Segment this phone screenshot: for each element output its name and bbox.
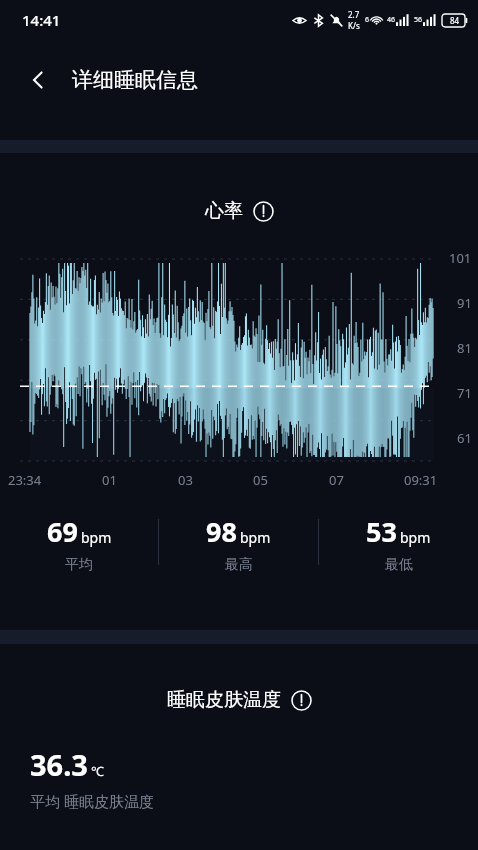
staticText: 53 xyxy=(366,513,397,550)
staticText: bpm xyxy=(400,528,431,547)
button[interactable]: 睡眠皮肤温度 xyxy=(0,688,478,712)
button[interactable]: 心率 xyxy=(0,199,478,223)
staticText: K/s xyxy=(348,20,360,31)
staticText: bpm xyxy=(81,528,112,547)
staticText: 81 xyxy=(457,339,472,357)
staticText: 71 xyxy=(457,384,472,402)
button[interactable]: 36.3 xyxy=(30,745,478,811)
other: Info xyxy=(253,201,274,222)
staticText: 最低 xyxy=(385,556,413,571)
staticText: 101 xyxy=(449,249,472,267)
button[interactable]: 98 xyxy=(159,513,318,571)
staticText: 03 xyxy=(178,471,193,489)
staticText: 最高 xyxy=(225,556,253,571)
staticText: 详细睡眠信息 xyxy=(72,67,198,93)
staticText: 69 xyxy=(47,513,78,550)
staticText: 心率 xyxy=(205,199,243,223)
staticText: 14:41 xyxy=(22,10,61,30)
staticText: bpm xyxy=(240,528,271,547)
staticText: 56 xyxy=(414,15,423,25)
other: Info xyxy=(291,690,312,711)
staticText: 98 xyxy=(206,513,237,550)
staticText: 睡眠皮肤温度 xyxy=(167,688,281,712)
staticText: 36.3 xyxy=(30,745,88,784)
staticText: 05 xyxy=(253,471,268,489)
staticText: 平均 xyxy=(65,556,93,571)
staticText: 23:34 xyxy=(8,471,42,489)
staticText: 61 xyxy=(457,429,472,447)
staticText: 2.7 xyxy=(348,9,360,20)
button[interactable]: Back xyxy=(16,58,60,102)
button[interactable]: 53 xyxy=(319,513,478,571)
staticText: 91 xyxy=(457,294,472,312)
staticText: 84 xyxy=(450,15,460,26)
staticText: 平均 睡眠皮肤温度 xyxy=(30,791,154,811)
staticText: ℃ xyxy=(91,762,104,780)
staticText: 01 xyxy=(102,471,117,489)
staticText: 07 xyxy=(329,471,344,489)
staticText: 6 xyxy=(365,15,370,25)
button[interactable]: 69 xyxy=(0,513,158,571)
staticText: 46 xyxy=(387,15,396,25)
staticText: 09:31 xyxy=(404,471,438,489)
